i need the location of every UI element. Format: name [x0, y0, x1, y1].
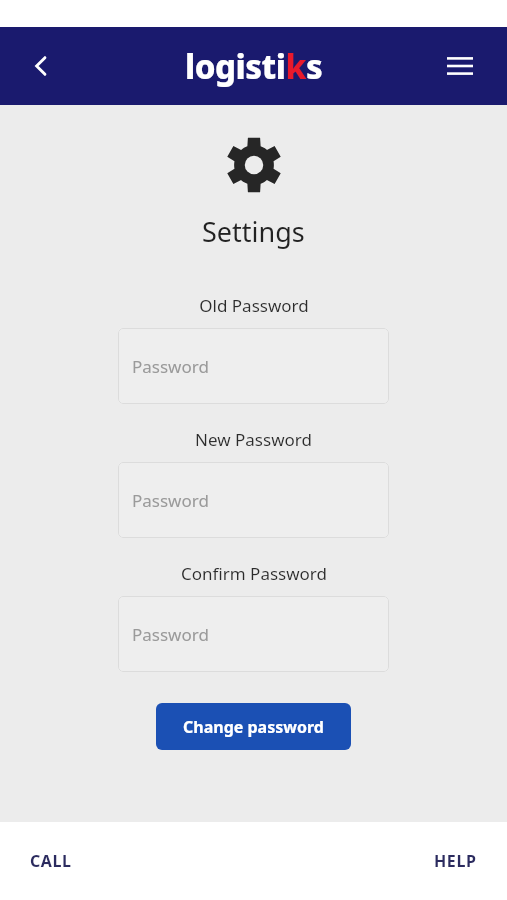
staticText: Password	[132, 623, 209, 646]
staticText: Confirm Password	[181, 562, 327, 585]
staticText: Old Password	[199, 294, 309, 317]
staticText: Password	[132, 489, 209, 512]
button[interactable]: Menu	[437, 43, 483, 89]
staticText: HELP	[434, 850, 477, 872]
staticText: logistiks	[185, 44, 323, 89]
button[interactable]: CALL	[16, 840, 86, 882]
button[interactable]: Change password	[156, 703, 351, 750]
button[interactable]: Password	[118, 596, 389, 672]
staticText: New Password	[195, 428, 312, 451]
button[interactable]: Password	[118, 462, 389, 538]
button[interactable]: logistiks	[185, 44, 323, 89]
staticText: CALL	[30, 850, 72, 872]
staticText: Change password	[183, 716, 324, 738]
button[interactable]: Password	[118, 328, 389, 404]
staticText: Settings	[202, 213, 305, 250]
button[interactable]: HELP	[420, 840, 491, 882]
staticText: Password	[132, 355, 209, 378]
button[interactable]: Back	[16, 41, 66, 91]
